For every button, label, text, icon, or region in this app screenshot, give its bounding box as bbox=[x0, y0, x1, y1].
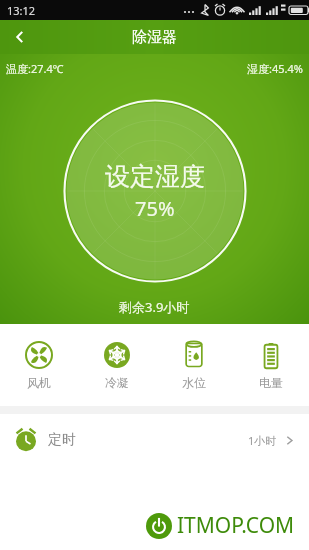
staticText: 设定湿度 bbox=[105, 161, 205, 192]
staticText: 1小时 bbox=[248, 433, 277, 448]
staticText: 定时 bbox=[48, 431, 76, 449]
staticText: 温度:27.4℃ bbox=[6, 61, 64, 76]
staticText: 75% bbox=[135, 195, 175, 222]
button[interactable]: 电量 bbox=[232, 324, 309, 406]
staticText: 水位 bbox=[182, 375, 206, 390]
button[interactable]: 定时 bbox=[0, 414, 309, 466]
button[interactable]: 设定湿度 bbox=[63, 99, 247, 283]
staticText: 除湿器 bbox=[132, 28, 177, 47]
staticText: 电量 bbox=[259, 375, 283, 390]
staticText: 风机 bbox=[27, 375, 51, 390]
button[interactable]: Back bbox=[0, 20, 40, 54]
staticText: 剩余3.9小时 bbox=[119, 298, 190, 316]
staticText: 冷凝 bbox=[105, 375, 129, 390]
staticText: 湿度:45.4% bbox=[247, 61, 303, 76]
button[interactable]: 冷凝 bbox=[78, 324, 155, 406]
staticText: 13:12 bbox=[7, 3, 36, 18]
staticText: ITMOP.COM bbox=[177, 511, 295, 540]
button[interactable]: 风机 bbox=[0, 324, 78, 406]
button[interactable]: 水位 bbox=[155, 324, 232, 406]
